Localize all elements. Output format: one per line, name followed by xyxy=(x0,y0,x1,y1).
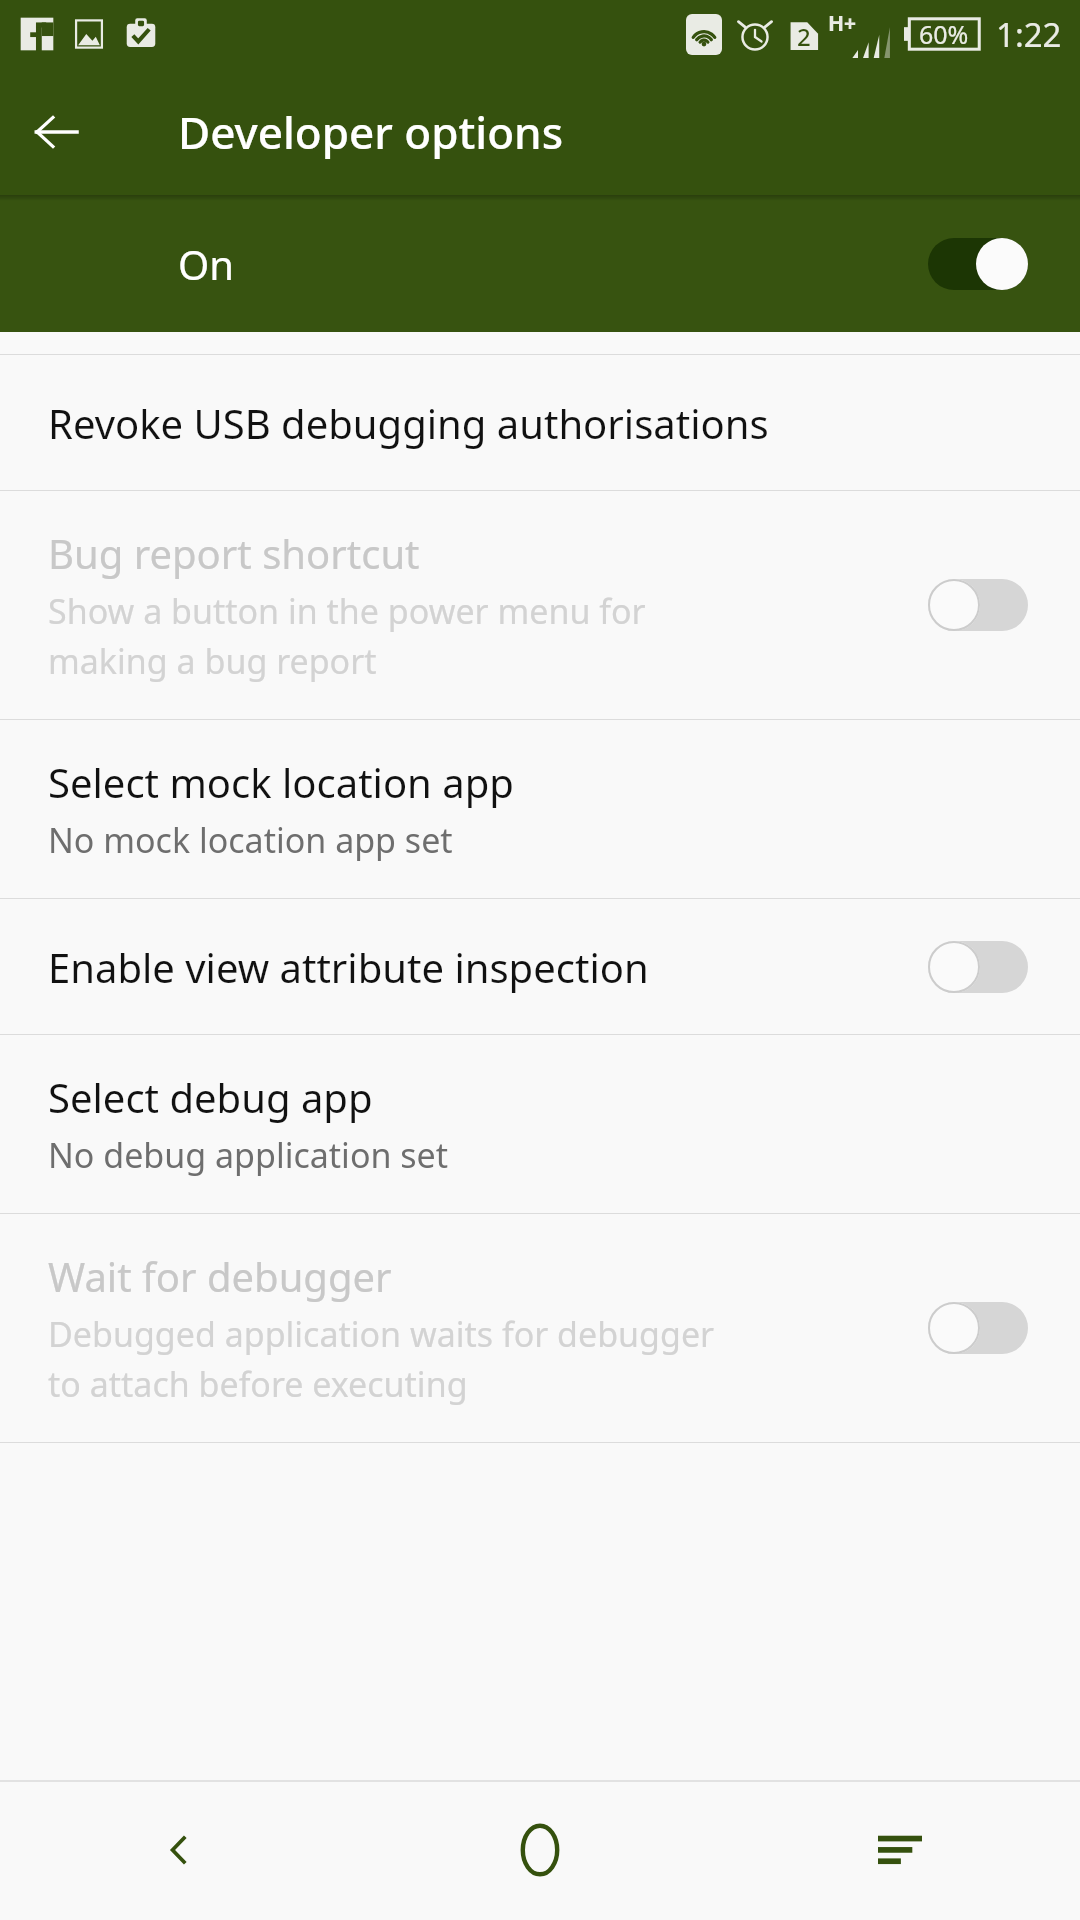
button[interactable]: Back xyxy=(0,1780,360,1920)
staticText: Select mock location app xyxy=(48,755,514,809)
button[interactable]: Bug report shortcut xyxy=(0,491,1080,719)
button[interactable]: Select debug app xyxy=(0,1035,1080,1213)
staticText: Debugged application waits for debugger … xyxy=(48,1311,715,1407)
staticText: H+ xyxy=(828,9,857,38)
button[interactable]: Home xyxy=(360,1780,720,1920)
button[interactable]: Recent apps xyxy=(720,1780,1080,1920)
staticText: On xyxy=(178,237,234,291)
button[interactable]: Select mock location app xyxy=(0,720,1080,898)
staticText: Wait for debugger xyxy=(48,1249,392,1303)
staticText: Revoke USB debugging authorisations xyxy=(48,396,769,450)
staticText: Enable view attribute inspection xyxy=(48,940,649,994)
staticText: Show a button in the power menu for maki… xyxy=(48,588,646,684)
staticText: 2 xyxy=(797,20,811,53)
button[interactable]: Revoke USB debugging authorisations xyxy=(0,355,1080,490)
staticText: No mock location app set xyxy=(48,817,453,863)
staticText: 1:22 xyxy=(996,12,1062,57)
button[interactable]: On xyxy=(0,195,1080,332)
button[interactable]: Enable view attribute inspection xyxy=(0,899,1080,1034)
staticText: Select debug app xyxy=(48,1070,373,1124)
staticText: No debug application set xyxy=(48,1132,449,1178)
button[interactable]: Wait for debugger xyxy=(0,1214,1080,1442)
staticText: Bug report shortcut xyxy=(48,526,420,580)
button[interactable]: Back xyxy=(20,96,92,168)
staticText: Developer options xyxy=(178,102,564,162)
staticText: 60% xyxy=(919,17,969,51)
